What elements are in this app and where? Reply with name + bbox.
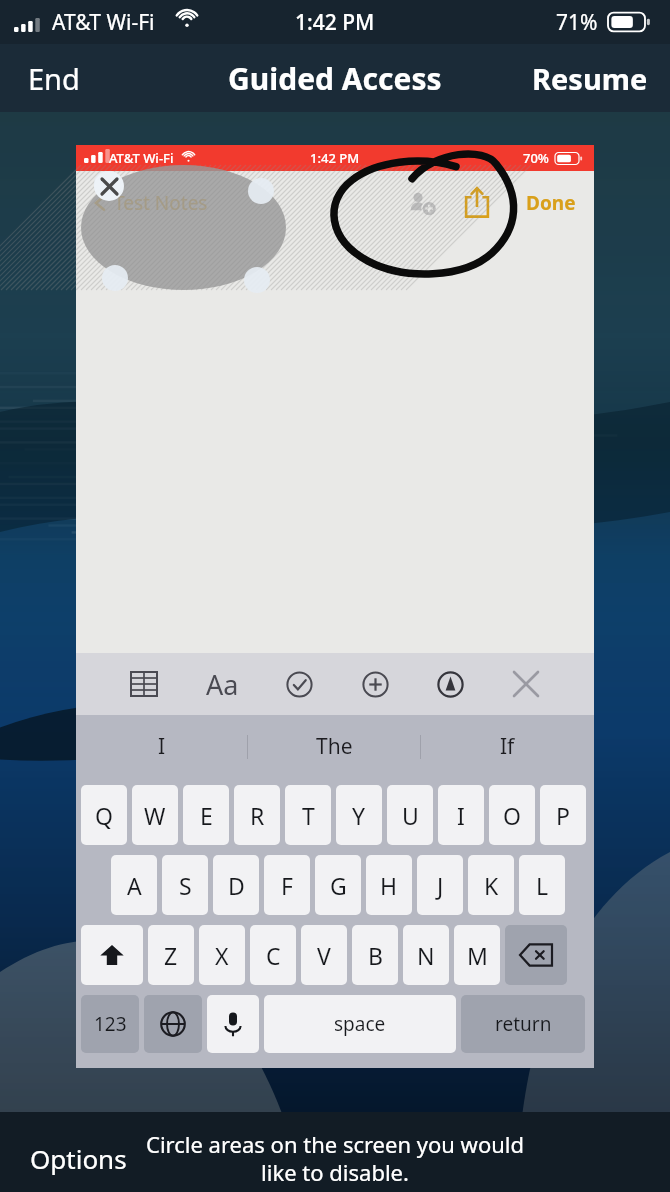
button[interactable]: Checklist	[277, 662, 321, 706]
staticText: P	[556, 800, 570, 831]
button[interactable]: Options	[30, 1141, 127, 1176]
button[interactable]: J	[417, 855, 463, 915]
staticText: End	[28, 59, 80, 98]
staticText: If	[500, 732, 515, 761]
staticText: Z	[164, 940, 178, 971]
button[interactable]	[144, 995, 202, 1053]
staticText: Guided Access	[228, 58, 442, 99]
button[interactable]: If	[421, 715, 594, 778]
button[interactable]: Y	[336, 785, 382, 845]
staticText: space	[334, 1011, 386, 1037]
button[interactable]: W	[132, 785, 178, 845]
button[interactable]: I	[76, 715, 248, 778]
button[interactable]: O	[489, 785, 535, 845]
button[interactable]: End	[28, 59, 80, 98]
staticText: M	[467, 940, 488, 971]
button[interactable]	[81, 925, 143, 985]
button[interactable]: A	[111, 855, 157, 915]
staticText: W	[144, 800, 166, 831]
button[interactable]: G	[315, 855, 361, 915]
button[interactable]: E	[183, 785, 229, 845]
staticText: I	[457, 800, 465, 831]
staticText: 71%	[556, 8, 598, 37]
staticText: F	[281, 870, 293, 901]
button[interactable]: N	[403, 925, 449, 985]
button[interactable]: U	[387, 785, 433, 845]
button[interactable]: H	[366, 855, 412, 915]
button[interactable]: D	[213, 855, 259, 915]
staticText: AT&T Wi-Fi	[109, 149, 174, 167]
button[interactable]: K	[468, 855, 514, 915]
staticText: Circle areas on the screen you would lik…	[125, 1129, 545, 1187]
staticText: K	[484, 870, 499, 901]
staticText: J	[437, 870, 444, 901]
button[interactable]: Add people	[402, 183, 442, 223]
button[interactable]: Remove area	[94, 171, 124, 201]
button[interactable]: return	[461, 995, 585, 1053]
staticText: B	[368, 940, 383, 971]
button[interactable]: S	[162, 855, 208, 915]
button[interactable]: I	[438, 785, 484, 845]
staticText: 1:42 PM	[295, 8, 375, 37]
button[interactable]	[505, 925, 567, 985]
staticText: L	[536, 870, 549, 901]
button[interactable]: Share	[460, 186, 494, 220]
button[interactable]: Markup	[428, 662, 472, 706]
button[interactable]: Z	[148, 925, 194, 985]
staticText: V	[317, 940, 331, 971]
button[interactable]: V	[301, 925, 347, 985]
staticText: Q	[95, 800, 113, 831]
staticText: S	[179, 870, 192, 901]
staticText: Y	[352, 800, 366, 831]
staticText: N	[417, 940, 435, 971]
staticText: The	[316, 732, 353, 761]
button[interactable]: The	[248, 715, 421, 778]
button[interactable]: Resume	[532, 59, 648, 98]
staticText: T	[302, 800, 315, 831]
staticText: H	[380, 870, 398, 901]
button[interactable]: L	[519, 855, 565, 915]
button[interactable]: space	[264, 995, 456, 1053]
staticText: Done	[526, 190, 576, 216]
button[interactable]: M	[454, 925, 500, 985]
button[interactable]: Add	[353, 662, 397, 706]
staticText: 1:42 PM	[310, 149, 360, 167]
staticText: I	[158, 732, 166, 761]
staticText: X	[215, 940, 229, 971]
button[interactable]: 123	[81, 995, 139, 1053]
staticText: Resume	[532, 59, 648, 98]
button[interactable]: Q	[81, 785, 127, 845]
button[interactable]: R	[234, 785, 280, 845]
staticText: A	[127, 870, 142, 901]
button[interactable]: C	[250, 925, 296, 985]
button[interactable]: Aa	[198, 660, 246, 708]
staticText: G	[330, 870, 347, 901]
button[interactable]: T	[285, 785, 331, 845]
staticText: R	[250, 800, 265, 831]
button[interactable]: X	[199, 925, 245, 985]
button[interactable]: P	[540, 785, 586, 845]
button[interactable]: F	[264, 855, 310, 915]
staticText: E	[200, 800, 213, 831]
staticText: AT&T Wi-Fi	[52, 8, 155, 37]
button[interactable]: Done	[526, 190, 576, 216]
staticText: O	[503, 800, 521, 831]
button[interactable]: Close toolbar	[504, 662, 548, 706]
staticText: 123	[94, 1011, 127, 1037]
button[interactable]: B	[352, 925, 398, 985]
staticText: Aa	[206, 666, 239, 703]
staticText: D	[228, 870, 245, 901]
staticText: U	[402, 800, 419, 831]
staticText: C	[266, 940, 281, 971]
button[interactable]	[207, 995, 259, 1053]
staticText: return	[495, 1011, 552, 1037]
staticText: Test Notes	[114, 190, 208, 216]
staticText: 70%	[523, 149, 549, 167]
button[interactable]: Table	[122, 662, 166, 706]
